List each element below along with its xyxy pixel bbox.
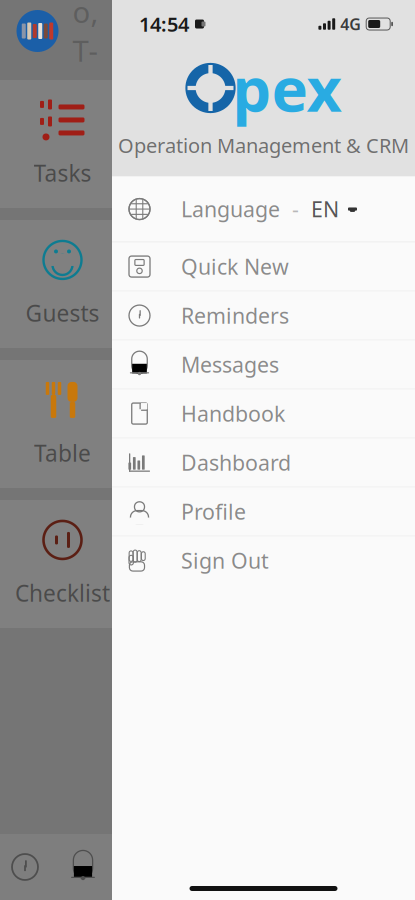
button[interactable]: Dashboard: [112, 439, 415, 487]
button[interactable]: Handbook: [112, 390, 415, 438]
staticText: EN: [311, 195, 339, 223]
staticText: Sign Out: [181, 546, 269, 575]
staticText: Quick New: [181, 252, 289, 281]
staticText: Dashboard: [181, 448, 291, 477]
staticText: Messages: [181, 350, 279, 379]
staticText: 4G: [340, 13, 361, 35]
staticText: Operation Management & CRM: [118, 132, 409, 159]
button[interactable]: Messages: [112, 341, 415, 389]
button[interactable]: Reminders: [112, 292, 415, 340]
staticText: Language: [181, 195, 280, 223]
staticText: pex: [232, 47, 341, 129]
button[interactable]: Notifications: [54, 837, 112, 897]
button[interactable]: Reminders: [0, 837, 54, 897]
staticText: Profile: [181, 497, 246, 526]
staticText: Reminders: [181, 301, 289, 330]
staticText: Hello, Team: [72, 0, 103, 187]
staticText: Checklist: [15, 578, 110, 608]
staticText: Guests: [25, 298, 99, 328]
staticText: 14:54: [139, 11, 189, 37]
staticText: Tasks: [33, 158, 91, 188]
button[interactable]: Sign Out: [112, 537, 415, 585]
button[interactable]: Quick New: [112, 243, 415, 291]
button[interactable]: Profile: [112, 488, 415, 536]
button[interactable]: Language: [112, 177, 415, 242]
staticText: -: [280, 195, 311, 223]
staticText: Table: [34, 438, 91, 468]
staticText: Handbook: [181, 399, 285, 428]
